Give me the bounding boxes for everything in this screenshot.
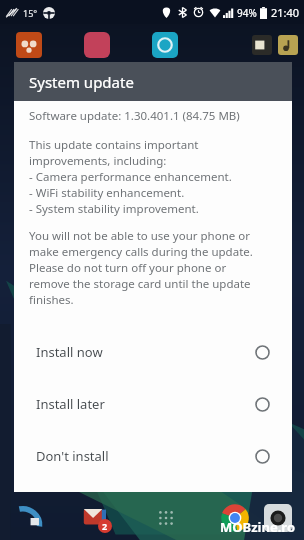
staticText: remove the storage card until the update: [29, 276, 251, 292]
staticText: Install later: [36, 395, 105, 413]
button[interactable]: Apps: [153, 505, 179, 531]
staticText: MOBzine.ro: [220, 518, 296, 536]
staticText: 15°: [23, 7, 38, 19]
button[interactable]: Camera: [264, 504, 292, 532]
staticText: Software update: 1.30.401.1 (84.75 MB): [29, 108, 240, 124]
staticText: improvements, including:: [29, 153, 167, 169]
staticText: 21:40: [271, 5, 300, 20]
button[interactable]: Phone: [16, 504, 44, 532]
staticText: Don't install: [36, 447, 109, 465]
staticText: Install now: [36, 343, 103, 361]
button[interactable]: App: [278, 35, 298, 55]
button[interactable]: Messages: [82, 503, 112, 533]
staticText: System update: [29, 72, 134, 92]
button[interactable]: Install later: [14, 378, 292, 430]
staticText: This update contains important: [29, 137, 199, 153]
staticText: make emergency calls during the update.: [29, 244, 253, 260]
staticText: - System stability improvement.: [29, 201, 199, 217]
staticText: - Camera performance enhancement.: [29, 169, 232, 185]
button[interactable]: App: [252, 35, 272, 55]
staticText: You will not be able to use your phone o…: [29, 228, 250, 244]
button[interactable]: App: [152, 32, 178, 58]
button[interactable]: Don't install: [14, 430, 292, 482]
staticText: finishes.: [29, 292, 74, 308]
staticText: 94%: [237, 6, 257, 20]
button[interactable]: App: [16, 32, 42, 58]
button[interactable]: App: [84, 32, 110, 58]
button[interactable]: Install now: [14, 326, 292, 378]
staticText: 2: [102, 520, 108, 532]
staticText: Please do not turn off your phone or: [29, 260, 227, 276]
staticText: - WiFi stability enhancement.: [29, 185, 185, 201]
button[interactable]: Chrome: [220, 503, 250, 533]
